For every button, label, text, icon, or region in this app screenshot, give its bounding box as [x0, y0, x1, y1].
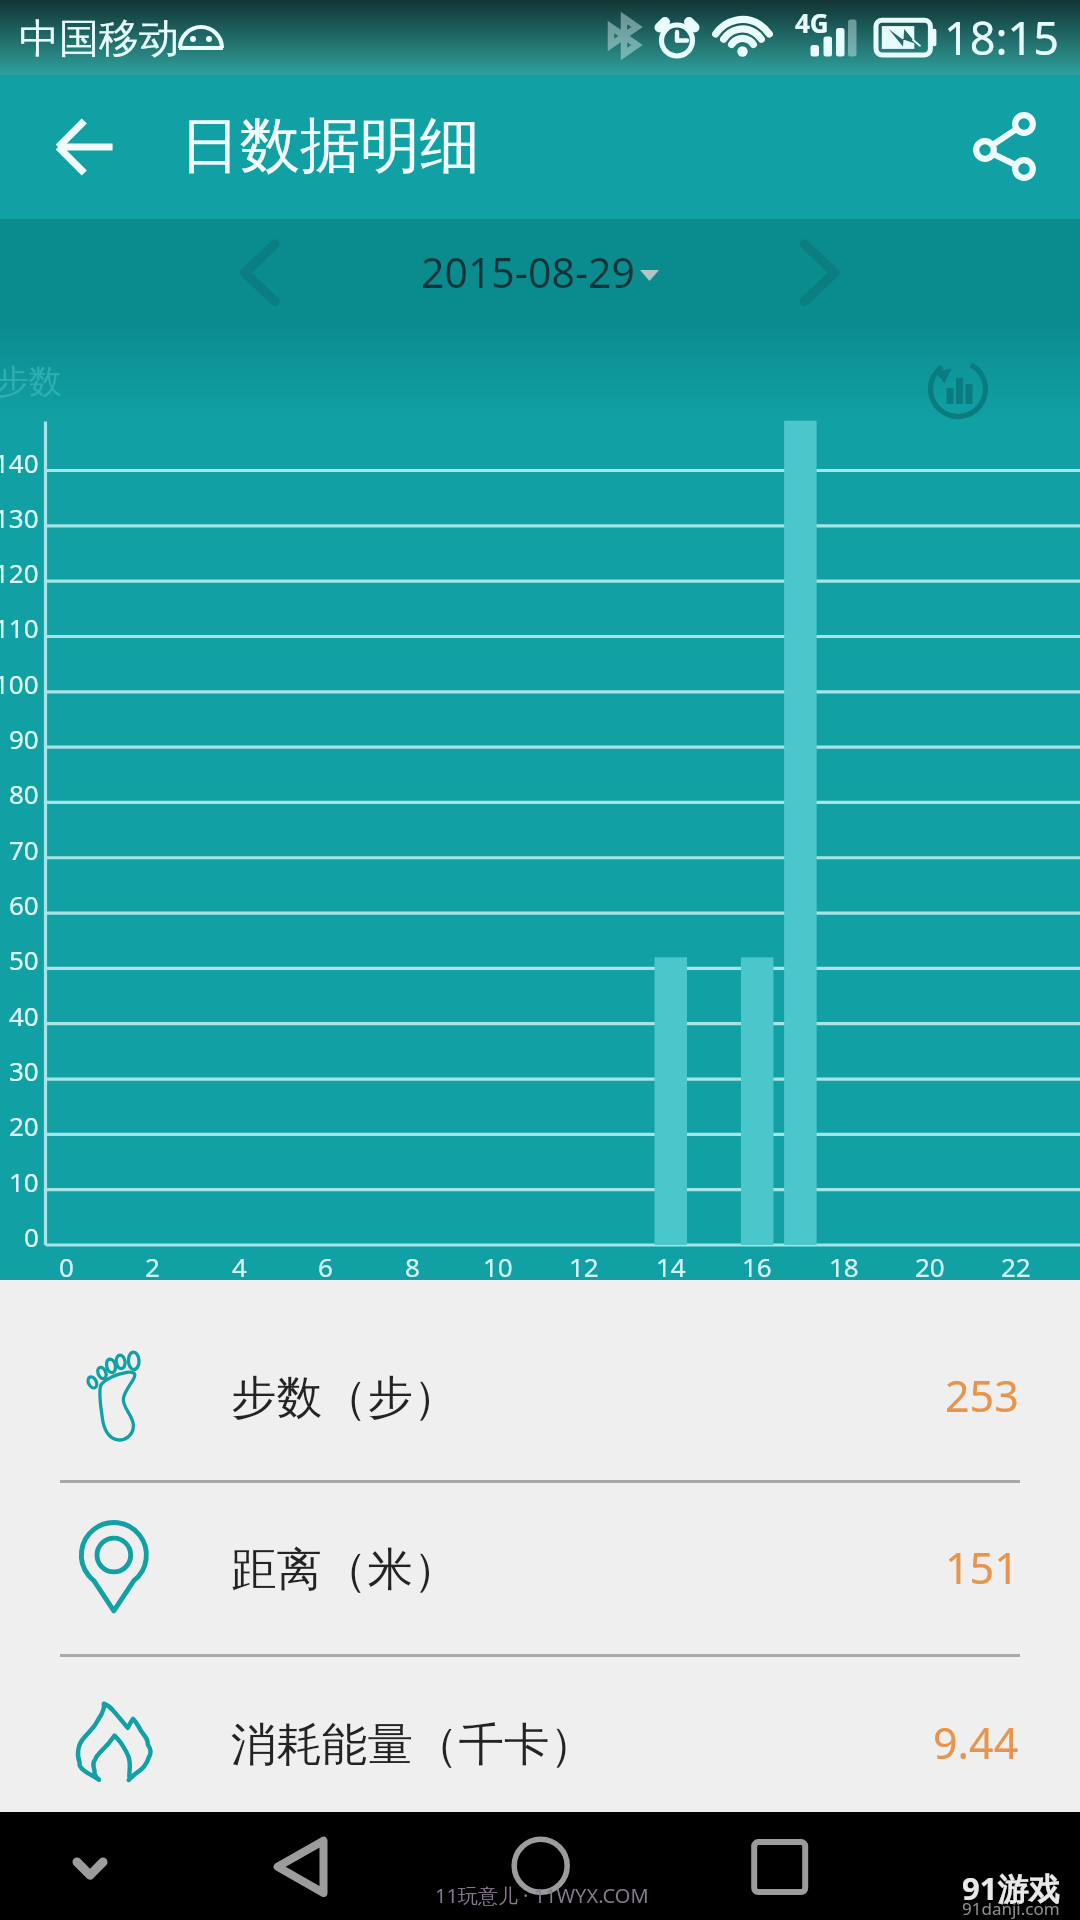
staticText: 14 — [656, 1249, 686, 1279]
button[interactable]: Home — [486, 1812, 596, 1920]
staticText: 6 — [318, 1249, 333, 1279]
staticText: 50 — [9, 942, 39, 977]
button[interactable]: Back — [30, 92, 140, 202]
staticText: 20 — [9, 1108, 39, 1143]
staticText: 2 — [145, 1249, 160, 1279]
button[interactable]: 消耗能量（千卡） — [0, 1655, 1080, 1829]
staticText: 中国移动 — [19, 13, 179, 63]
staticText: 90 — [9, 721, 39, 756]
staticText: 18 — [829, 1249, 859, 1279]
staticText: 22 — [1001, 1249, 1031, 1279]
staticText: 80 — [9, 776, 39, 811]
staticText: 0 — [59, 1249, 74, 1279]
button[interactable]: 2015-08-29 — [421, 244, 659, 300]
staticText: 120 — [0, 555, 39, 590]
staticText: 130 — [0, 500, 39, 535]
staticText: 2015-08-29 — [421, 244, 636, 300]
staticText: 91danji.com — [962, 1897, 1060, 1920]
staticText: 8 — [405, 1249, 420, 1279]
staticText: 30 — [9, 1053, 39, 1088]
staticText: 151 — [945, 1538, 1019, 1597]
staticText: 0 — [24, 1219, 39, 1254]
button[interactable]: Chart options — [927, 358, 989, 420]
staticText: 40 — [9, 998, 39, 1033]
button[interactable]: Back — [250, 1812, 360, 1920]
staticText: 4 — [232, 1249, 247, 1279]
staticText: 253 — [945, 1366, 1019, 1425]
staticText: 110 — [0, 610, 39, 645]
button[interactable]: Recents — [725, 1812, 835, 1920]
staticText: 10 — [483, 1249, 513, 1279]
staticText: 9.44 — [933, 1713, 1019, 1772]
staticText: 距离（米） — [231, 1541, 459, 1598]
staticText: 步数（步） — [231, 1369, 459, 1426]
staticText: 18:15 — [944, 7, 1060, 68]
staticText: 70 — [9, 832, 39, 867]
staticText: 步数 — [0, 361, 62, 403]
staticText: 16 — [742, 1249, 772, 1279]
button[interactable]: Previous day — [205, 220, 315, 330]
staticText: 日数据明细 — [180, 108, 480, 184]
staticText: 140 — [0, 445, 39, 480]
button[interactable]: 距离（米） — [0, 1480, 1080, 1654]
button[interactable]: Next day — [765, 220, 875, 330]
staticText: 11玩意儿 · 11WYX.COM — [435, 1882, 649, 1909]
button[interactable]: 步数（步） — [0, 1308, 1080, 1482]
staticText: 10 — [9, 1164, 39, 1199]
staticText: 100 — [0, 666, 39, 701]
button[interactable]: Hide navigation bar — [55, 1832, 125, 1902]
button[interactable]: Share — [954, 92, 1064, 202]
staticText: 消耗能量（千卡） — [231, 1716, 595, 1773]
staticText: 60 — [9, 887, 39, 922]
staticText: 20 — [915, 1249, 945, 1279]
staticText: 4G — [795, 5, 829, 40]
staticText: 12 — [569, 1249, 599, 1279]
staticText: 91游戏 — [962, 1867, 1060, 1909]
